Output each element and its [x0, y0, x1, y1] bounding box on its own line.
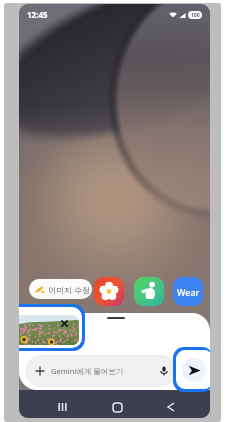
button[interactable]: 이미지 수정 [29, 279, 92, 299]
button[interactable]: Back [161, 397, 181, 417]
button[interactable]: Gallery [94, 277, 124, 306]
button[interactable]: Home [107, 397, 127, 417]
staticText: 12:45 [27, 9, 48, 20]
button[interactable]: Wear [173, 277, 203, 306]
staticText: Gemini에게 물어보기 [51, 366, 124, 376]
button[interactable]: Attached image [19, 309, 82, 347]
button[interactable]: Recents [52, 397, 72, 417]
staticText: 100 [191, 12, 200, 19]
staticText: Wear [177, 286, 200, 298]
button[interactable]: Remove image [60, 319, 69, 328]
button[interactable]: Send [182, 360, 206, 384]
button[interactable]: Samsung Health [134, 277, 164, 306]
button[interactable]: Gemini에게 물어보기 [25, 355, 177, 387]
staticText: 이미지 수정 [48, 284, 91, 295]
